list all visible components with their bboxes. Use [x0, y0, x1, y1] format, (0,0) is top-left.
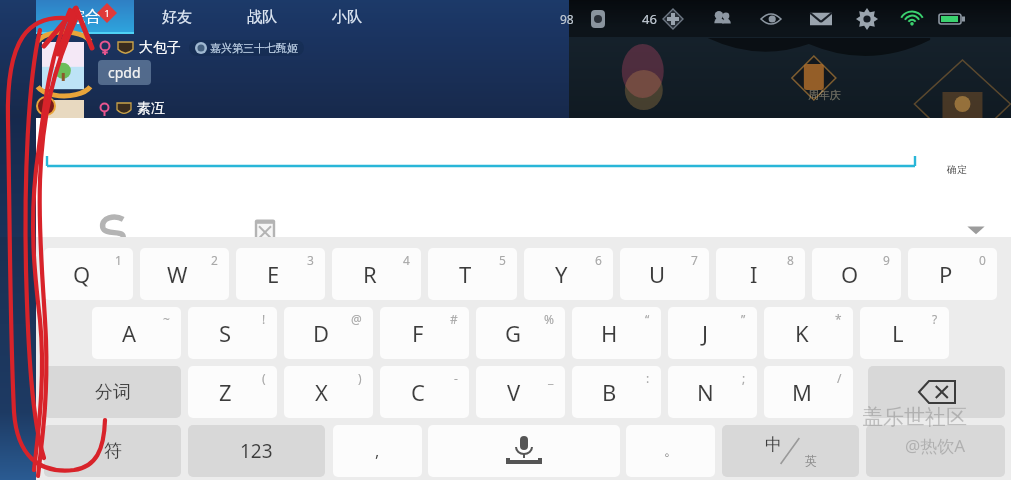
button[interactable]: 符 [44, 425, 181, 477]
staticText: 9 [883, 252, 890, 268]
staticText: G [505, 318, 522, 348]
button[interactable]: Z [188, 366, 277, 418]
staticText: 英 [805, 453, 817, 468]
button[interactable]: P [908, 248, 997, 300]
button[interactable]: R [332, 248, 421, 300]
button[interactable]: H [572, 307, 661, 359]
staticText: 3 [307, 252, 314, 268]
staticText: 98 [560, 11, 574, 27]
staticText: H [601, 318, 618, 348]
staticText: 小队 [332, 8, 362, 27]
button[interactable]: B [572, 366, 661, 418]
button[interactable]: Space / Voice input [428, 425, 620, 477]
staticText: Y [555, 259, 568, 289]
staticText: @热饮A [905, 434, 966, 457]
button[interactable]: V [476, 366, 565, 418]
button[interactable]: 123 [188, 425, 325, 477]
staticText: K [795, 318, 809, 348]
staticText: F [412, 318, 424, 348]
staticText: 1 [115, 252, 122, 268]
button[interactable]: 。 [626, 425, 715, 477]
button[interactable]: 中 [722, 425, 859, 477]
staticText: I [750, 259, 758, 289]
staticText: 123 [240, 438, 273, 464]
button[interactable]: Sogou input [96, 214, 130, 248]
staticText: 确定 [947, 163, 967, 176]
staticText: S [219, 318, 232, 348]
button[interactable]: Q [44, 248, 133, 300]
staticText: 分词 [95, 381, 131, 404]
button[interactable]: 小队 [304, 0, 389, 34]
staticText: P [939, 259, 953, 289]
button[interactable]: Backspace [868, 366, 1005, 418]
button[interactable]: F [380, 307, 469, 359]
staticText: M [792, 377, 812, 407]
staticText: 嘉兴第三十七甄姬 [210, 41, 298, 55]
button[interactable]: U [620, 248, 709, 300]
button[interactable] [0, 118, 1011, 240]
button[interactable]: Y [524, 248, 613, 300]
staticText: 中 [765, 434, 782, 455]
button[interactable]: Mail [809, 7, 833, 31]
staticText: N [697, 377, 714, 407]
staticText: Q [73, 259, 91, 289]
button[interactable]: J [668, 307, 757, 359]
button[interactable]: 大包子 [98, 38, 304, 58]
staticText: ” [741, 311, 746, 327]
staticText: E [267, 259, 280, 289]
other: Battery [939, 12, 965, 26]
button[interactable]: W [140, 248, 229, 300]
staticText: 0 [979, 252, 986, 268]
staticText: W [167, 259, 188, 289]
button[interactable]: D [284, 307, 373, 359]
staticText: 1 [104, 7, 110, 19]
button[interactable]: I [716, 248, 805, 300]
button[interactable]: M [764, 366, 853, 418]
staticText: 综合 [69, 7, 101, 27]
button[interactable]: K [764, 307, 853, 359]
staticText: A [122, 318, 137, 348]
staticText: cpdd [108, 63, 141, 82]
staticText: - [454, 370, 458, 386]
staticText: Z [219, 377, 232, 407]
button[interactable]: Settings [855, 7, 879, 31]
staticText: R [363, 259, 377, 289]
button[interactable]: , [333, 425, 422, 477]
button[interactable]: Spectate [759, 7, 783, 31]
staticText: B [602, 377, 617, 407]
button[interactable]: C [380, 366, 469, 418]
button[interactable]: O [812, 248, 901, 300]
button[interactable]: Coin [588, 9, 608, 29]
button[interactable]: 综合 [36, 0, 134, 34]
button[interactable]: X [284, 366, 373, 418]
button[interactable]: Friends [711, 8, 733, 30]
button[interactable]: 分词 [44, 366, 181, 418]
staticText: 盖乐世社区 [862, 404, 967, 430]
button[interactable]: T [428, 248, 517, 300]
staticText: “ [645, 311, 650, 327]
staticText: 5 [499, 252, 506, 268]
staticText: 6 [595, 252, 602, 268]
button[interactable]: S [188, 307, 277, 359]
button[interactable]: Enter [866, 425, 1005, 477]
staticText: ! [262, 311, 266, 327]
button[interactable]: G [476, 307, 565, 359]
button[interactable]: E [236, 248, 325, 300]
staticText: , [375, 440, 380, 462]
button[interactable]: cpdd [108, 63, 141, 82]
button[interactable]: Add [661, 7, 685, 31]
button[interactable]: 战队 [219, 0, 304, 34]
staticText: J [702, 318, 709, 348]
staticText: ) [358, 370, 362, 386]
staticText: ; [742, 370, 746, 386]
button[interactable]: N [668, 366, 757, 418]
staticText: * [835, 311, 842, 327]
button[interactable]: L [860, 307, 949, 359]
button[interactable]: 好友 [134, 0, 219, 34]
button[interactable]: Collapse toolbar [958, 212, 994, 248]
staticText: @ [351, 311, 362, 327]
staticText: 7 [691, 252, 698, 268]
button[interactable]: A [92, 307, 181, 359]
button[interactable]: 确定 [944, 160, 970, 179]
button[interactable]: Clipboard [250, 216, 280, 246]
